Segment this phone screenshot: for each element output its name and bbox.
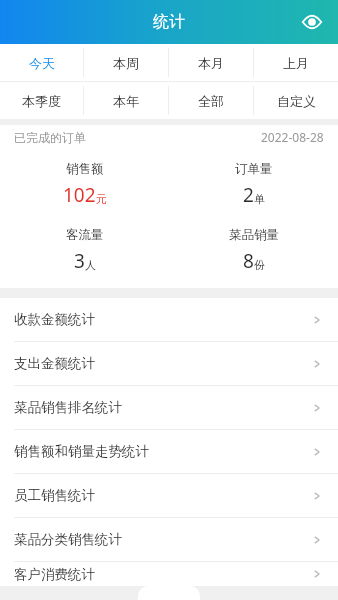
button[interactable]: 销售额和销量走势统计	[0, 430, 338, 473]
staticText: 102	[63, 182, 96, 208]
button[interactable]: 支出金额统计	[0, 342, 338, 385]
staticText: 本年	[113, 93, 139, 109]
staticText: 上月	[283, 55, 309, 71]
button[interactable]: 菜品分类销售统计	[0, 518, 338, 561]
staticText: 本月	[198, 55, 224, 71]
button[interactable]: 今天	[0, 44, 83, 81]
button[interactable]: 员工销售统计	[0, 474, 338, 517]
staticText: 3	[74, 248, 85, 274]
staticText: 菜品销量	[229, 227, 279, 243]
staticText: 本季度	[22, 93, 61, 109]
staticText: 销售额	[66, 161, 104, 177]
button[interactable]: 菜品销售排名统计	[0, 386, 338, 429]
staticText: 客流量	[66, 227, 104, 243]
staticText: 客户消费统计	[14, 566, 310, 583]
staticText: 元	[96, 192, 107, 206]
button[interactable]: 本周	[84, 44, 168, 81]
staticText: 已完成的订单	[14, 130, 86, 145]
button[interactable]: 收款金额统计	[0, 298, 338, 341]
staticText: 今天	[29, 55, 55, 71]
staticText: 员工销售统计	[14, 487, 310, 504]
staticText: 2022-08-28	[261, 129, 324, 145]
button[interactable]: 自定义	[254, 82, 338, 119]
staticText: 本周	[113, 55, 139, 71]
button[interactable]: 全部	[169, 82, 253, 119]
staticText: 支出金额统计	[14, 355, 310, 372]
staticText: 单	[254, 192, 265, 206]
button[interactable]: 本月	[169, 44, 253, 81]
staticText: 自定义	[277, 93, 316, 109]
staticText: 全部	[198, 93, 224, 109]
staticText: 份	[254, 258, 265, 272]
button[interactable]: 客户消费统计	[0, 562, 338, 586]
staticText: 收款金额统计	[14, 311, 310, 328]
button[interactable]: 上月	[254, 44, 338, 81]
button[interactable]: 本季度	[0, 82, 83, 119]
staticText: 菜品分类销售统计	[14, 531, 310, 548]
staticText: 2	[243, 182, 254, 208]
staticText: 菜品销售排名统计	[14, 399, 310, 416]
staticText: 订单量	[235, 161, 273, 177]
button[interactable]: 本年	[84, 82, 168, 119]
button[interactable]: Toggle visibility	[296, 6, 328, 38]
staticText: 统计	[153, 12, 185, 32]
staticText: 8	[243, 248, 254, 274]
staticText: 人	[85, 258, 96, 272]
staticText: 销售额和销量走势统计	[14, 443, 310, 460]
